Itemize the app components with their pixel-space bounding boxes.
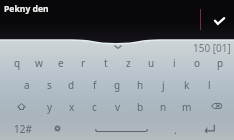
staticText: b [137,100,144,114]
staticText: h [137,78,144,92]
button[interactable]: v [106,96,129,118]
staticText: i [173,56,176,70]
staticText: d [68,78,75,92]
staticText: k [184,78,190,92]
button[interactable]: k [175,74,198,96]
staticText: o [194,56,201,70]
staticText: z [126,56,131,70]
button[interactable]: Send message [206,9,230,31]
staticText: s [47,78,52,92]
staticText: v [115,100,121,114]
button[interactable]: Backspace [198,96,232,118]
staticText: j [162,78,165,92]
button[interactable]: s [38,74,60,96]
button[interactable]: Keyboard settings [40,118,74,140]
button[interactable]: Hide keyboard [108,40,128,51]
button[interactable]: z [117,52,140,74]
staticText: Pekny den [4,3,49,15]
button[interactable]: p [209,52,232,74]
staticText: a [24,78,30,92]
staticText: q [14,56,21,70]
button[interactable]: r [72,52,94,74]
button[interactable]: j [152,74,175,96]
button[interactable]: e [50,52,72,74]
button[interactable]: l [198,74,221,96]
button[interactable]: x [61,96,83,118]
staticText: g [114,78,121,92]
button[interactable]: 12# [6,118,40,140]
button[interactable]: f [83,74,106,96]
staticText: y [47,100,53,114]
staticText: u [148,56,155,70]
button[interactable]: . [164,118,187,140]
button[interactable]: h [129,74,152,96]
staticText: l [208,78,211,92]
button[interactable]: Space [74,118,164,140]
button[interactable]: q [6,52,28,74]
staticText: x [69,100,75,114]
staticText: n [160,100,167,114]
staticText: m [182,100,192,114]
staticText: t [104,56,108,70]
staticText: 12# [14,122,32,136]
button[interactable]: Shift [6,96,39,118]
staticText: e [58,56,64,70]
button[interactable]: o [186,52,209,74]
button[interactable]: g [106,74,129,96]
button[interactable]: y [39,96,61,118]
button[interactable]: w [28,52,50,74]
button[interactable]: a [16,74,38,96]
button[interactable]: d [60,74,83,96]
staticText: c [92,100,97,114]
button[interactable]: c [83,96,106,118]
button[interactable]: m [175,96,198,118]
button[interactable]: t [94,52,117,74]
button[interactable]: u [140,52,163,74]
button[interactable]: b [129,96,152,118]
staticText: 150 [01] [193,41,231,55]
button[interactable]: i [163,52,186,74]
staticText: f [93,78,97,92]
staticText: w [35,56,43,70]
button[interactable]: n [152,96,175,118]
button[interactable]: Enter [187,118,232,140]
staticText: p [217,56,224,70]
staticText: . [174,122,177,137]
staticText: r [81,56,86,70]
